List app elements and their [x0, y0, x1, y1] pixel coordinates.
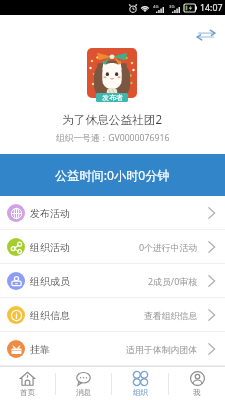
staticText: 组织成员 [30, 275, 70, 288]
staticText: 14:07 [200, 2, 223, 14]
staticText: 公益时间:0小时0分钟 [55, 167, 170, 184]
staticText: 4G [153, 4, 159, 10]
staticText: 组织信息 [30, 309, 70, 322]
button[interactable]: 我 [169, 367, 225, 400]
staticText: 消息 [76, 388, 91, 397]
button[interactable]: 组织成员 [0, 264, 225, 298]
button[interactable]: 公益时间:0小时0分钟 [0, 154, 225, 196]
button[interactable]: 首页 [0, 367, 55, 400]
staticText: 0个进行中活动 [139, 241, 198, 253]
staticText: 发布活动 [30, 207, 70, 220]
staticText: 组织一号通：GV0000076916 [56, 132, 170, 144]
staticText: 组织活动 [30, 241, 70, 254]
button[interactable]: 消息 [56, 367, 111, 400]
staticText: 首页 [20, 388, 35, 397]
button[interactable]: 组织 [112, 367, 168, 400]
staticText: 发布者 [102, 93, 123, 102]
staticText: 2成员/0审核 [148, 275, 198, 287]
staticText: 适用于体制内团体 [126, 344, 198, 355]
staticText: 查看组织信息 [144, 310, 198, 321]
staticText: 3G [169, 4, 175, 10]
button[interactable]: 组织活动 [0, 230, 225, 264]
button[interactable]: 组织信息 [0, 298, 225, 332]
staticText: 组织 [133, 388, 148, 397]
staticText: 挂靠 [30, 343, 50, 356]
button[interactable]: Switch organization [194, 23, 217, 46]
button[interactable]: 发布活动 [0, 196, 225, 230]
button[interactable]: 挂靠 [0, 332, 225, 366]
staticText: 为了休息公益社团2 [62, 111, 163, 127]
button[interactable]: Organization avatar [87, 48, 137, 98]
staticText: 我 [193, 388, 201, 397]
